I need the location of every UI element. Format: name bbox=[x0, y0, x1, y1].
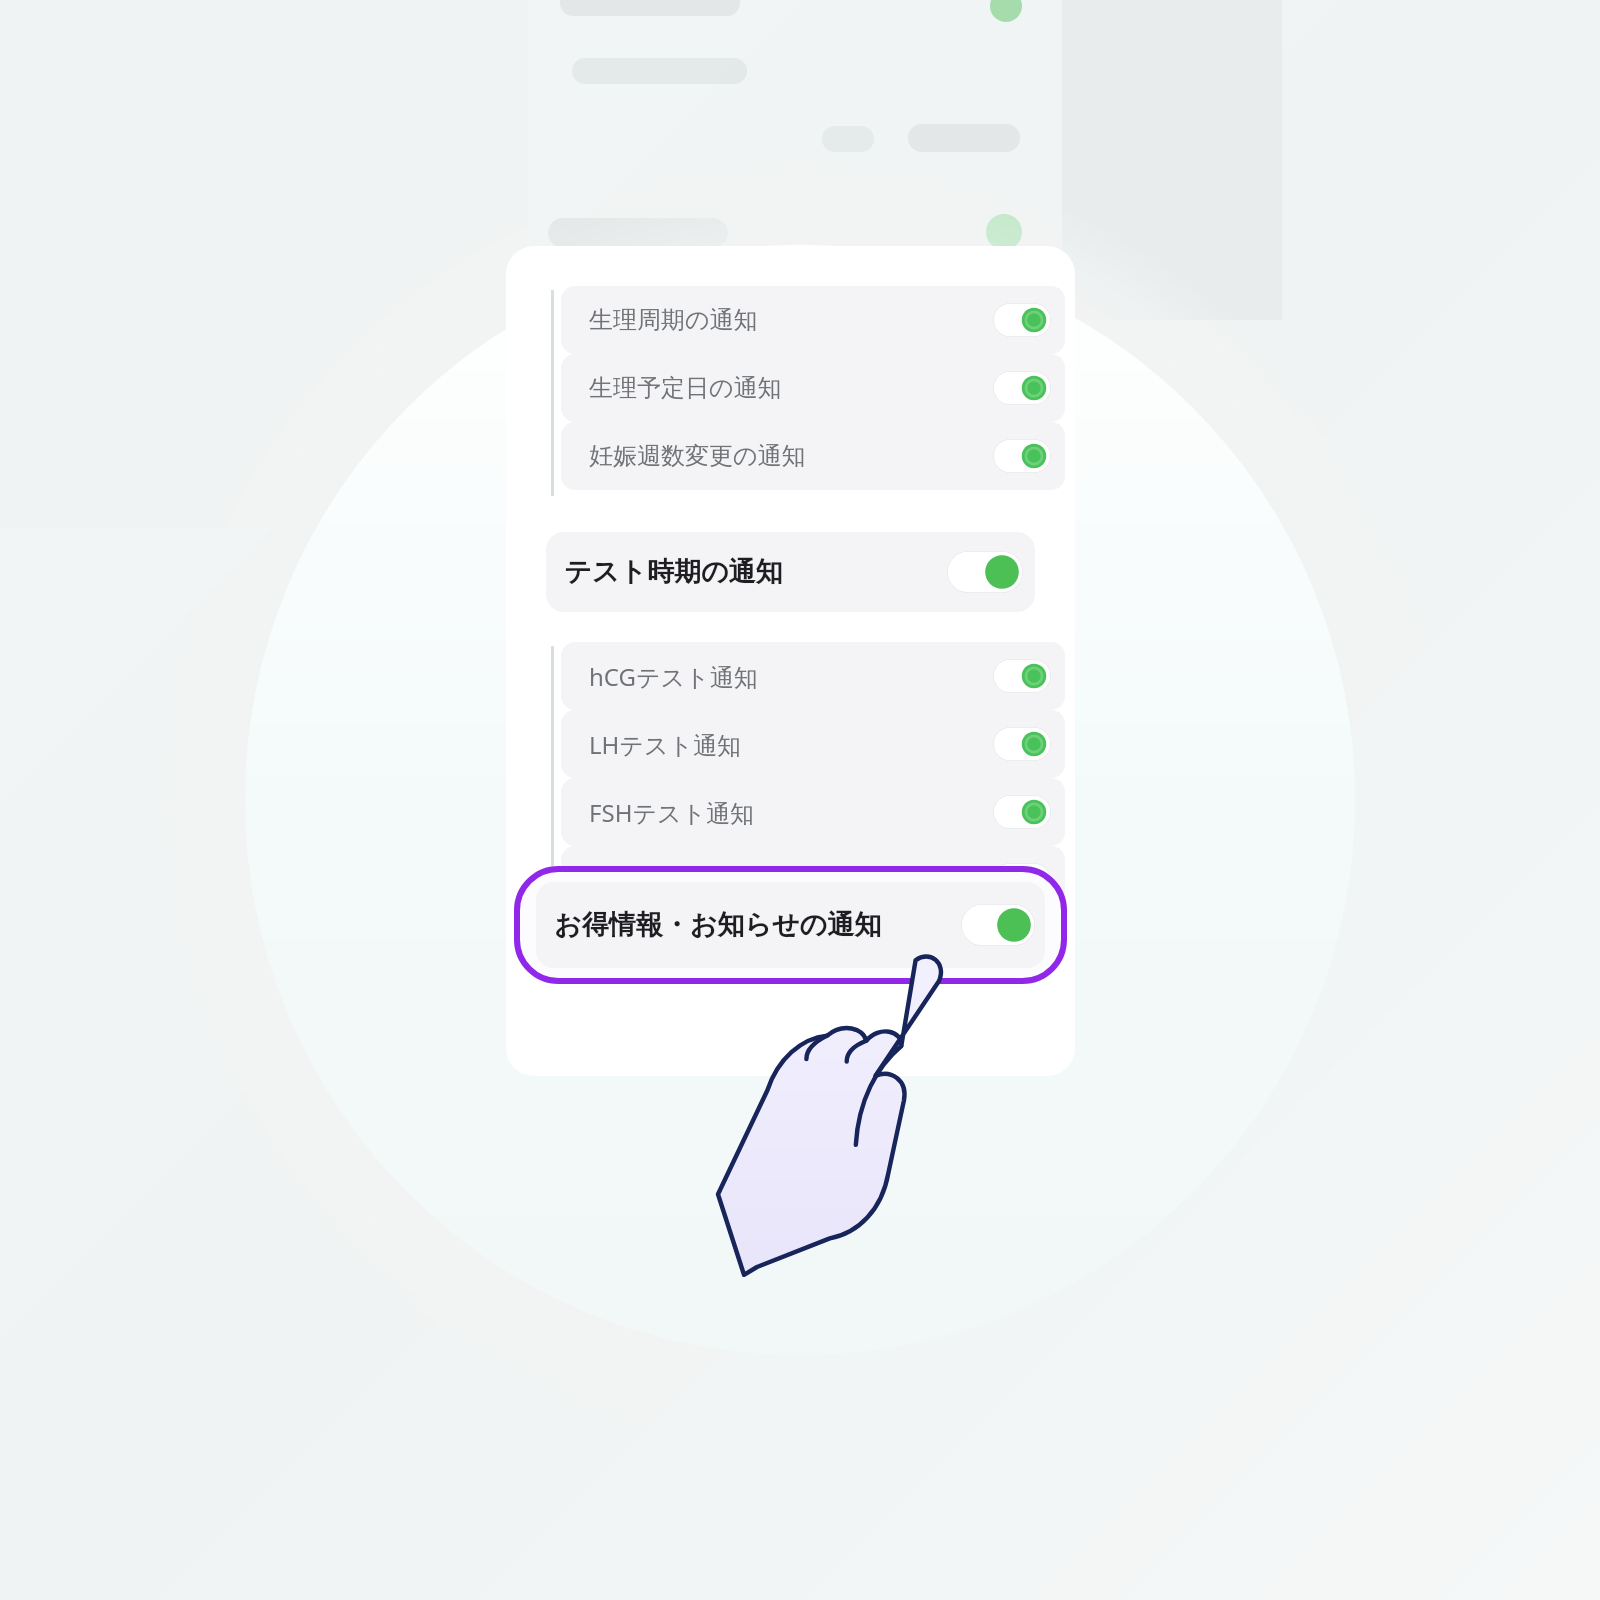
button[interactable]: 生理周期の通知 bbox=[561, 286, 1065, 354]
button[interactable]: Toggle bbox=[993, 659, 1051, 693]
staticText: hCGテスト通知 bbox=[589, 660, 758, 693]
button[interactable]: hCGテスト通知 bbox=[561, 642, 1065, 710]
button[interactable]: Toggle bbox=[993, 303, 1051, 337]
button[interactable]: FSHテスト通知 bbox=[561, 778, 1065, 846]
button[interactable]: お得情報・お知らせの通知 bbox=[536, 882, 1045, 968]
button[interactable]: ホルモンデュオ検査の通知 bbox=[561, 846, 1065, 914]
staticText: 妊娠週数変更の通知 bbox=[589, 441, 806, 471]
staticText: FSHテスト通知 bbox=[589, 796, 755, 829]
button[interactable]: LHテスト通知 bbox=[561, 710, 1065, 778]
staticText: ホルモンデュオ検査の通知 bbox=[589, 865, 882, 895]
button[interactable]: Toggle bbox=[993, 439, 1051, 473]
staticText: テスト時期の通知 bbox=[564, 555, 783, 589]
button[interactable]: テスト時期の通知 bbox=[546, 532, 1035, 612]
button[interactable]: Toggle bbox=[993, 371, 1051, 405]
button[interactable]: 妊娠週数変更の通知 bbox=[561, 422, 1065, 490]
button[interactable]: Toggle bbox=[993, 727, 1051, 761]
staticText: LHテスト通知 bbox=[589, 728, 742, 761]
staticText: お得情報・お知らせの通知 bbox=[554, 908, 882, 942]
staticText: 生理予定日の通知 bbox=[589, 373, 782, 403]
button[interactable]: Toggle bbox=[993, 795, 1051, 829]
button[interactable]: Toggle bbox=[947, 551, 1023, 593]
staticText: 生理周期の通知 bbox=[589, 305, 758, 335]
button[interactable]: Toggle bbox=[993, 863, 1051, 897]
button[interactable]: 生理予定日の通知 bbox=[561, 354, 1065, 422]
button[interactable]: Toggle bbox=[961, 904, 1035, 946]
